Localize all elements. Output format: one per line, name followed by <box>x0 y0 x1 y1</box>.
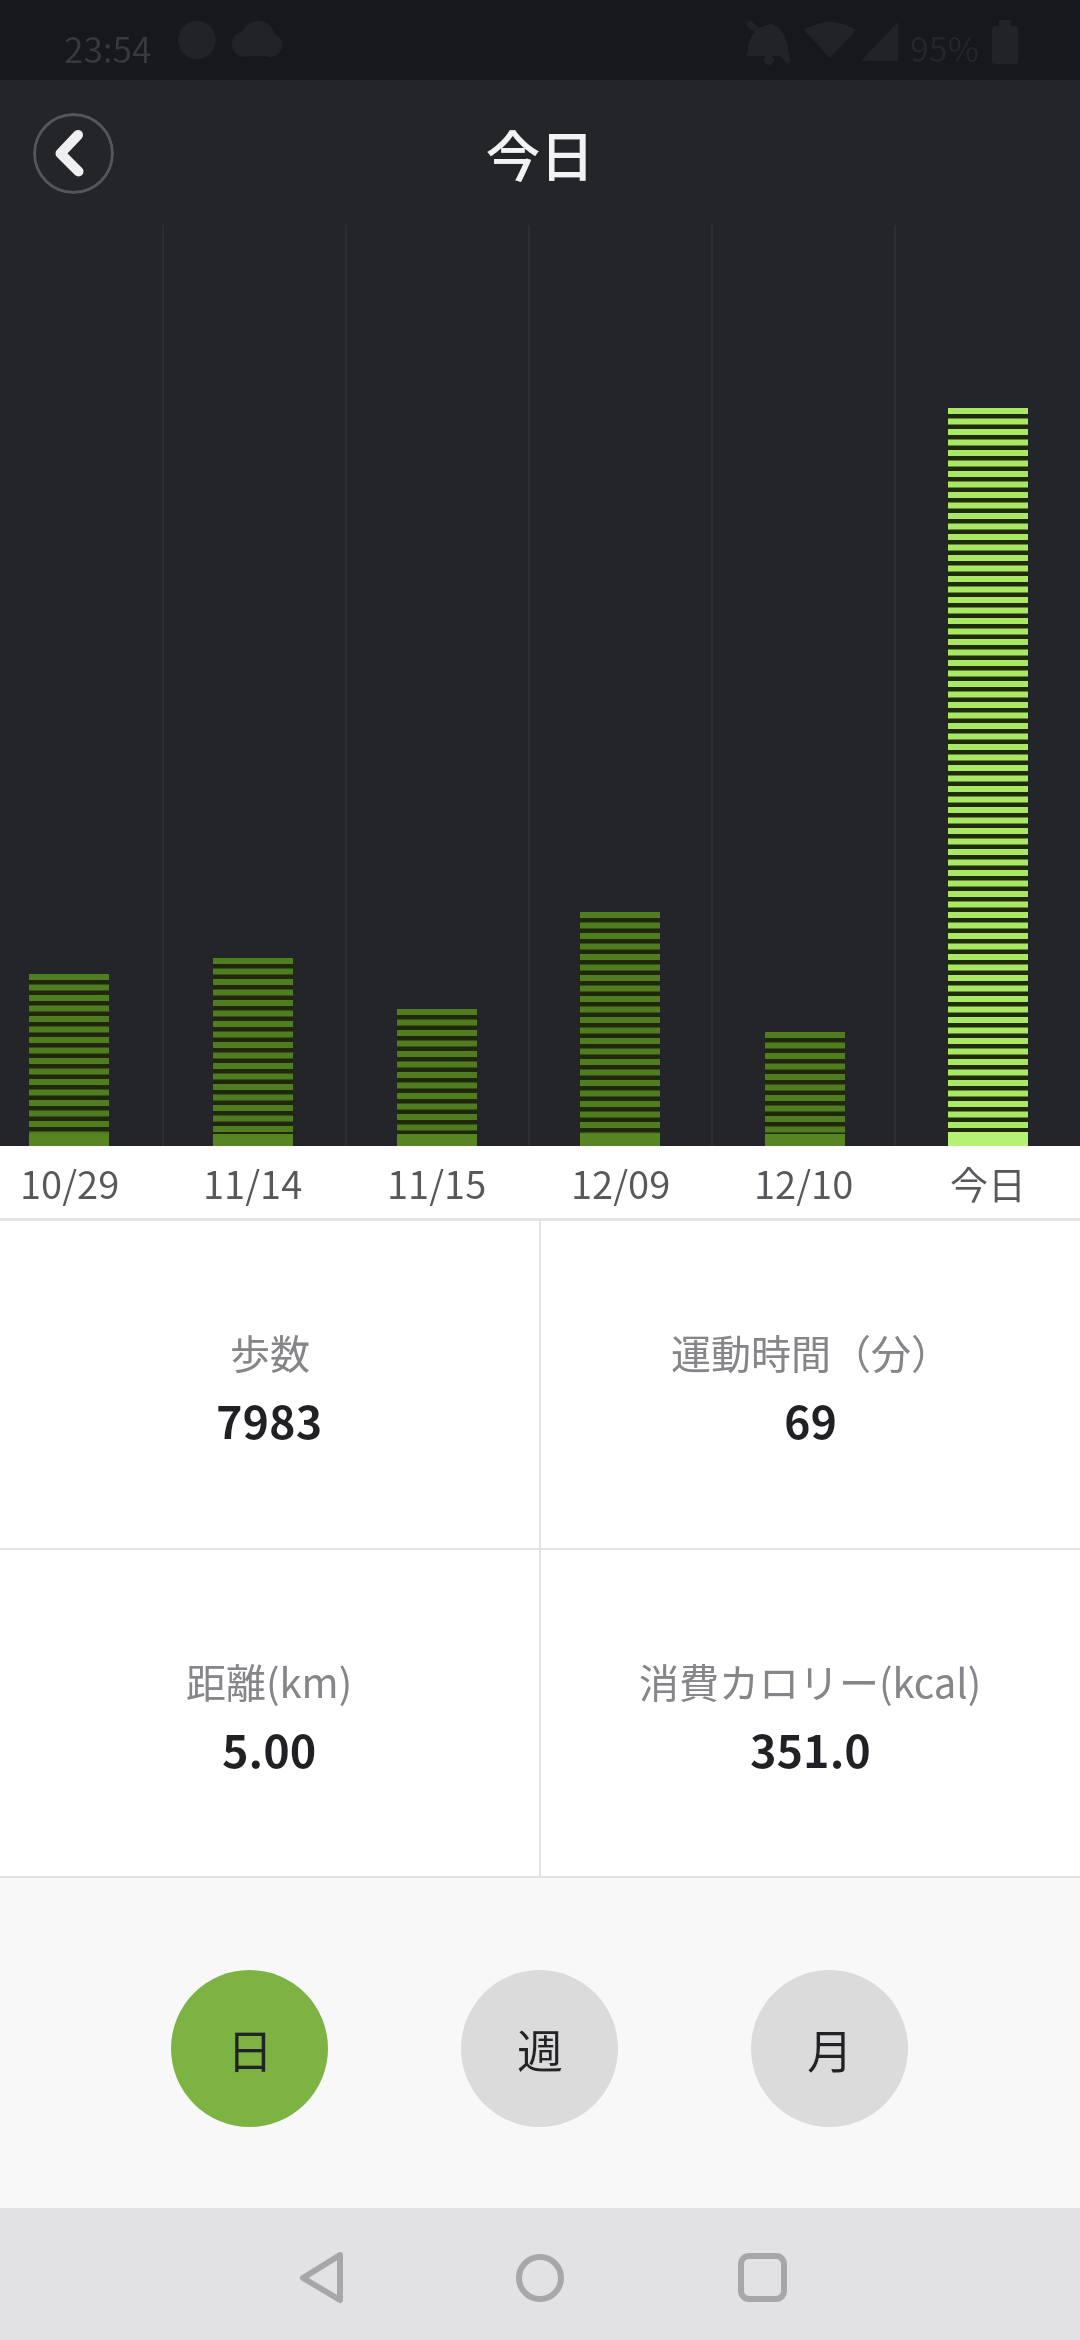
staticText: 10/29 <box>20 1155 120 1210</box>
button[interactable]: 週 <box>461 1970 618 2127</box>
staticText: 日 <box>227 2015 273 2082</box>
button[interactable]: 消費カロリー(kcal) <box>541 1550 1080 1876</box>
staticText: 今日 <box>486 114 594 192</box>
button[interactable] <box>290 2253 354 2317</box>
button[interactable]: 日 <box>171 1970 328 2127</box>
staticText: 歩数 <box>230 1323 310 1381</box>
button[interactable]: 距離(km) <box>0 1550 539 1876</box>
staticText: 距離(km) <box>186 1652 353 1710</box>
staticText: 69 <box>784 1387 838 1449</box>
button[interactable] <box>730 2253 794 2317</box>
staticText: 12/10 <box>754 1155 854 1210</box>
staticText: 週 <box>517 2015 563 2082</box>
staticText: 12/09 <box>571 1155 671 1210</box>
staticText: 運動時間（分） <box>671 1323 951 1381</box>
staticText: 11/14 <box>203 1155 303 1210</box>
button[interactable] <box>508 2253 572 2317</box>
button[interactable]: 運動時間（分） <box>541 1221 1080 1550</box>
button[interactable] <box>33 113 114 194</box>
staticText: 消費カロリー(kcal) <box>639 1652 982 1710</box>
staticText: 5.00 <box>222 1716 317 1778</box>
staticText: 95% <box>910 23 980 72</box>
button[interactable]: 月 <box>751 1970 908 2127</box>
staticText: 今日 <box>950 1155 1027 1210</box>
staticText: 月 <box>807 2015 853 2082</box>
button[interactable]: 歩数 <box>0 1221 539 1550</box>
staticText: 351.0 <box>750 1716 871 1778</box>
staticText: 23:54 <box>64 22 152 73</box>
staticText: 7983 <box>216 1387 323 1449</box>
staticText: 11/15 <box>387 1155 487 1210</box>
